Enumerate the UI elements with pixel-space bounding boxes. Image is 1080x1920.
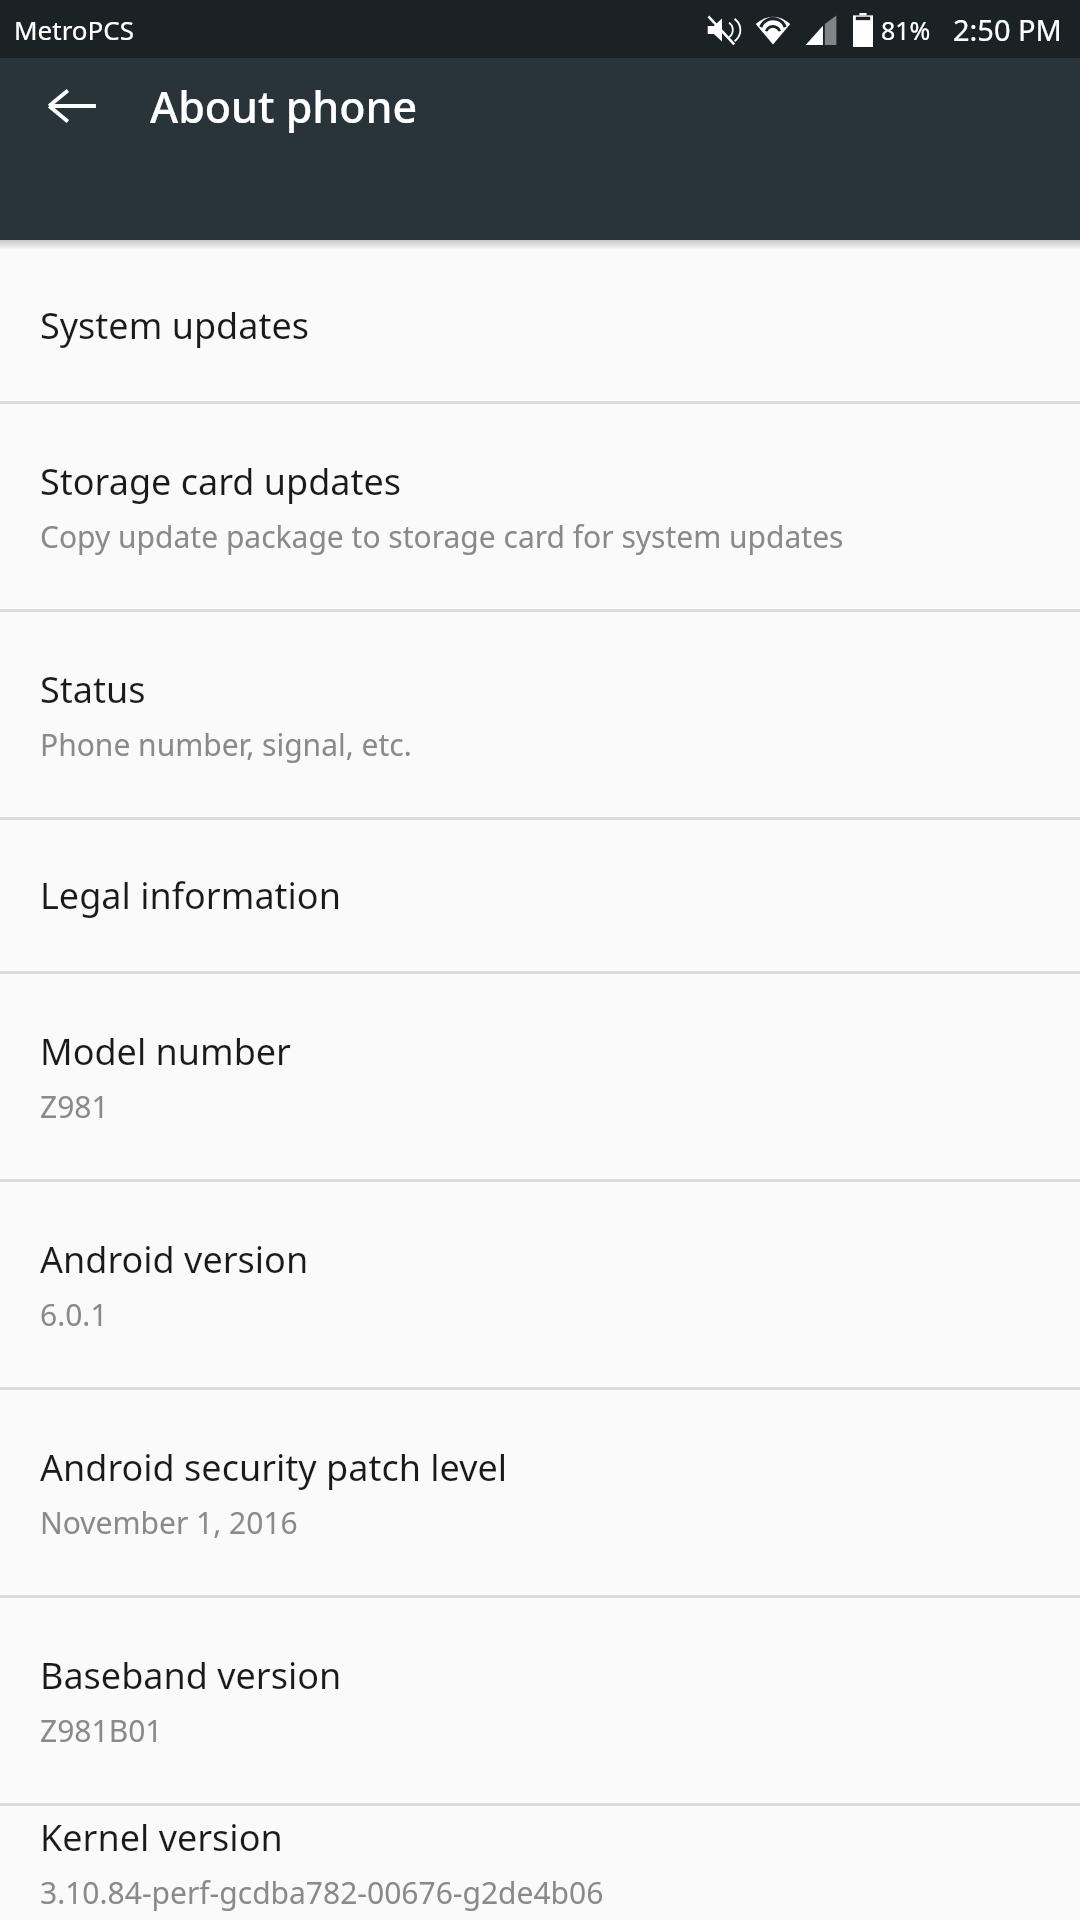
button[interactable]: Baseband version [0, 1598, 1080, 1803]
button[interactable]: Android security patch level [0, 1390, 1080, 1595]
staticText: November 1, 2016 [40, 1502, 298, 1543]
staticText: 81% [881, 13, 931, 47]
button[interactable]: Legal information [0, 820, 1080, 971]
staticText: Copy update package to storage card for … [40, 516, 844, 557]
button[interactable]: Kernel version [0, 1806, 1080, 1920]
button[interactable]: Back [24, 58, 120, 154]
staticText: Android security patch level [40, 1443, 508, 1492]
staticText: System updates [40, 301, 309, 350]
button[interactable]: System updates [0, 250, 1080, 401]
button[interactable]: Model number [0, 974, 1080, 1179]
staticText: 3.10.84-perf-gcdba782-00676-g2de4b06 [40, 1872, 604, 1913]
staticText: About phone [150, 77, 418, 136]
staticText: Storage card updates [40, 457, 402, 506]
staticText: Baseband version [40, 1651, 342, 1700]
staticText: Kernel version [40, 1813, 283, 1862]
staticText: MetroPCS [14, 12, 135, 47]
button[interactable]: Android version [0, 1182, 1080, 1387]
staticText: Model number [40, 1027, 291, 1076]
staticText: Z981B01 [40, 1710, 163, 1751]
button[interactable]: Storage card updates [0, 404, 1080, 609]
staticText: 6.0.1 [40, 1294, 108, 1335]
staticText: Phone number, signal, etc. [40, 724, 412, 765]
button[interactable]: Status [0, 612, 1080, 817]
staticText: Legal information [40, 871, 341, 920]
staticText: 2:50 PM [953, 10, 1062, 49]
staticText: Z981 [40, 1086, 109, 1127]
staticText: Android version [40, 1235, 309, 1284]
staticText: Status [40, 665, 146, 714]
